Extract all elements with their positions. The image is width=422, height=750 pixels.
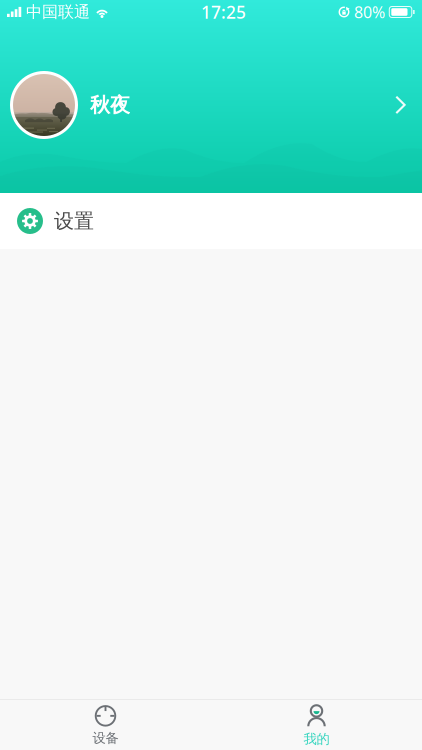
staticText: 80% bbox=[354, 1, 385, 23]
staticText: 设置 bbox=[54, 209, 94, 233]
staticText: 设备 bbox=[92, 730, 118, 746]
staticText: 中国联通 bbox=[26, 2, 90, 22]
button[interactable]: 设置 bbox=[0, 193, 422, 249]
staticText: 17:25 bbox=[201, 0, 246, 23]
button[interactable]: 设备 bbox=[0, 700, 211, 750]
button[interactable]: 秋夜 个人资料 bbox=[0, 71, 422, 139]
button[interactable]: 我的 bbox=[211, 700, 422, 750]
staticText: 秋夜 bbox=[90, 93, 130, 117]
staticText: 我的 bbox=[303, 731, 329, 747]
